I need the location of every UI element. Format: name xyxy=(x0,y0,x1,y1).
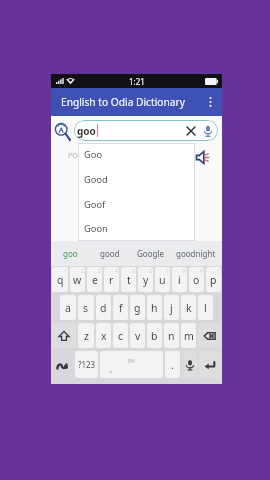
button[interactable]: q xyxy=(52,267,68,292)
button[interactable]: i xyxy=(172,267,187,292)
button[interactable]: x xyxy=(96,323,111,348)
button[interactable]: b xyxy=(147,323,162,348)
staticText: ?123 xyxy=(78,359,96,370)
staticText: 6 xyxy=(149,268,152,275)
staticText: Goof xyxy=(84,198,106,211)
staticText: r xyxy=(109,273,114,287)
staticText: EN xyxy=(128,358,135,365)
staticText: 3 xyxy=(98,268,101,275)
button[interactable]: goo xyxy=(51,241,90,266)
staticText: 1:21 xyxy=(129,76,145,87)
staticText: 9 xyxy=(200,268,203,275)
staticText: 5 xyxy=(132,268,135,275)
staticText: 4 xyxy=(115,268,118,275)
staticText: . xyxy=(171,358,174,372)
staticText: Google xyxy=(137,248,164,259)
staticText: Goon xyxy=(84,222,108,235)
staticText: goo xyxy=(77,124,96,138)
staticText: q xyxy=(57,273,64,287)
staticText: d xyxy=(100,301,107,315)
staticText: t xyxy=(127,273,131,287)
staticText: 7 xyxy=(166,268,169,275)
button[interactable]: t xyxy=(121,267,136,292)
button[interactable]: Voice input xyxy=(182,351,197,378)
button[interactable]: v xyxy=(130,323,145,348)
button[interactable]: a xyxy=(60,295,76,320)
staticText: c xyxy=(118,329,124,343)
staticText: f xyxy=(119,301,123,315)
button[interactable]: h xyxy=(147,295,162,320)
button[interactable]: s xyxy=(78,295,94,320)
staticText: s xyxy=(83,301,89,315)
staticText: Goo xyxy=(84,148,103,161)
button[interactable]: u xyxy=(155,267,170,292)
button[interactable]: , xyxy=(100,351,163,378)
staticText: v xyxy=(135,329,141,343)
staticText: j xyxy=(170,301,173,315)
staticText: English to Odia Dictionary xyxy=(61,95,185,109)
button[interactable]: Goo xyxy=(78,143,195,168)
button[interactable]: good xyxy=(90,241,130,266)
staticText: l xyxy=(204,301,207,315)
button[interactable]: p xyxy=(206,267,221,292)
staticText: 0 xyxy=(217,268,220,275)
button[interactable]: goodnight xyxy=(170,241,222,266)
staticText: e xyxy=(92,273,98,287)
staticText: good xyxy=(100,248,120,259)
staticText: g xyxy=(134,301,141,315)
button[interactable]: ?123 xyxy=(75,351,98,378)
button[interactable]: c xyxy=(113,323,128,348)
button[interactable]: j xyxy=(164,295,179,320)
staticText: h xyxy=(151,301,158,315)
staticText: x xyxy=(101,329,107,343)
staticText: o xyxy=(193,273,200,287)
staticText: b xyxy=(151,329,158,343)
staticText: Good xyxy=(84,173,108,186)
staticText: p xyxy=(210,273,217,287)
staticText: POS xyxy=(68,151,82,161)
button[interactable]: l xyxy=(198,295,213,320)
staticText: 8 xyxy=(183,268,186,275)
staticText: , xyxy=(110,363,113,374)
button[interactable]: Change language xyxy=(52,351,73,378)
staticText: 1 xyxy=(64,268,67,275)
button[interactable]: r xyxy=(104,267,119,292)
button[interactable]: g xyxy=(130,295,145,320)
staticText: goo xyxy=(63,248,78,259)
button[interactable]: Enter xyxy=(199,351,221,378)
staticText: n xyxy=(168,329,175,343)
button[interactable]: Clear text xyxy=(184,124,198,138)
staticText: i xyxy=(178,273,181,287)
staticText: 2 xyxy=(81,268,84,275)
button[interactable]: o xyxy=(189,267,204,292)
staticText: w xyxy=(73,273,82,287)
button[interactable]: m xyxy=(181,323,196,348)
button[interactable]: d xyxy=(96,295,111,320)
button[interactable]: Good xyxy=(78,168,195,193)
staticText: u xyxy=(159,273,166,287)
button[interactable]: w xyxy=(70,267,85,292)
staticText: z xyxy=(84,329,89,343)
button[interactable]: Shift xyxy=(52,323,76,348)
button[interactable]: y xyxy=(138,267,153,292)
button[interactable]: f xyxy=(113,295,128,320)
staticText: goodnight xyxy=(176,248,216,259)
staticText: m xyxy=(184,329,194,343)
button[interactable]: z xyxy=(78,323,94,348)
button[interactable]: Google xyxy=(130,241,170,266)
button[interactable]: Goof xyxy=(78,193,195,218)
button[interactable]: Pronounce xyxy=(192,147,212,167)
button[interactable]: More options xyxy=(198,90,222,114)
button[interactable]: e xyxy=(87,267,102,292)
button[interactable]: Voice search xyxy=(201,124,215,138)
staticText: a xyxy=(65,301,71,315)
button[interactable]: Delete xyxy=(198,323,221,348)
staticText: y xyxy=(143,273,149,287)
button[interactable]: . xyxy=(165,351,180,378)
staticText: k xyxy=(186,301,192,315)
button[interactable]: k xyxy=(181,295,196,320)
button[interactable]: n xyxy=(164,323,179,348)
button[interactable]: Goon xyxy=(78,218,195,241)
button[interactable]: Search xyxy=(52,118,74,140)
